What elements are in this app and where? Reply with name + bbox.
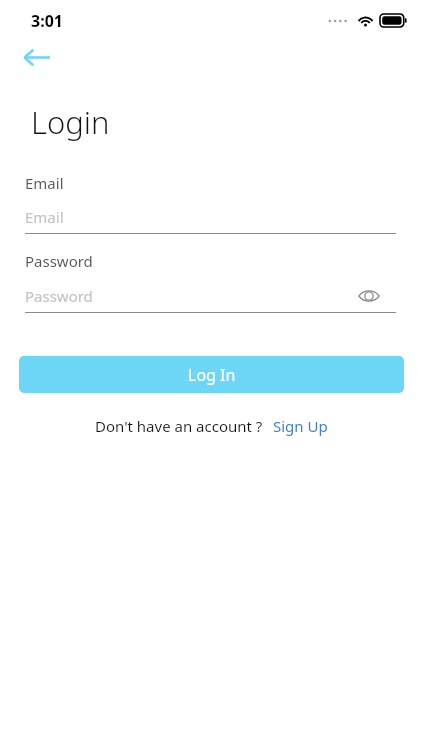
staticText: Sign Up <box>273 416 328 436</box>
staticText: Login <box>31 101 110 143</box>
button[interactable]: Email <box>25 200 396 234</box>
staticText: Don't have an account ? <box>95 416 263 436</box>
button[interactable]: Sign Up <box>273 416 328 436</box>
button[interactable]: Password <box>25 279 396 313</box>
button[interactable]: Back <box>14 41 58 73</box>
staticText: 3:01 <box>31 10 63 32</box>
button[interactable]: Log In <box>19 356 404 393</box>
staticText: Email <box>25 207 64 227</box>
staticText: Password <box>25 286 93 306</box>
button[interactable]: Show password <box>352 279 386 313</box>
staticText: Log In <box>188 364 236 386</box>
staticText: Password <box>25 251 93 271</box>
staticText: Email <box>25 173 64 193</box>
